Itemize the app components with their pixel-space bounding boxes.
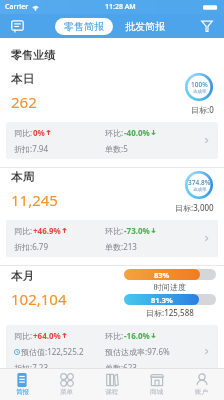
button[interactable]: 批发简报: [121, 18, 169, 35]
staticText: 单数:623: [105, 362, 137, 368]
staticText: 折扣:6.79: [14, 241, 49, 252]
button[interactable]: 本周: [0, 168, 224, 265]
staticText: 目标:0: [191, 104, 214, 115]
button[interactable]: 简报: [0, 369, 44, 400]
staticText: 课程: [105, 388, 118, 396]
button[interactable]: 课程: [89, 369, 134, 400]
staticText: 简报: [16, 388, 29, 396]
button[interactable]: 筛选: [198, 17, 216, 35]
button[interactable]: 本月: [0, 266, 224, 368]
staticText: 102,104: [11, 289, 67, 309]
staticText: -40.0%: [124, 127, 150, 138]
staticText: 262: [11, 92, 37, 112]
staticText: 批发简报: [125, 20, 165, 33]
staticText: 同比:: [14, 127, 33, 138]
staticText: 374.8%: [188, 178, 211, 187]
staticText: 零售简报: [64, 20, 104, 33]
staticText: 环比:: [105, 330, 124, 341]
staticText: 同比:: [14, 225, 33, 236]
staticText: -16.0%: [124, 330, 150, 341]
staticText: 单数:213: [105, 241, 137, 252]
staticText: 时间进度: [154, 282, 186, 292]
staticText: 本日: [11, 72, 34, 86]
staticText: 0%: [33, 127, 45, 138]
staticText: 达成率: [193, 89, 207, 95]
staticText: 11,245: [11, 190, 58, 210]
staticText: 折扣:7.23: [14, 362, 49, 368]
button[interactable]: 菜单: [44, 369, 89, 400]
staticText: 达成率: [193, 187, 207, 193]
staticText: 单数:5: [105, 143, 128, 154]
staticText: Carrier: [5, 2, 29, 12]
staticText: 11:28 AM: [105, 2, 136, 12]
staticText: 目标:125,588: [146, 307, 194, 318]
staticText: 菜单: [60, 388, 73, 396]
staticText: 商城: [150, 388, 163, 396]
staticText: 零售业绩: [11, 48, 55, 62]
staticText: 目标:3,000: [175, 202, 214, 213]
button[interactable]: 账户: [179, 369, 224, 400]
staticText: 同比:: [14, 330, 33, 341]
button[interactable]: 零售简报: [55, 18, 113, 35]
staticText: 环比:: [105, 127, 124, 138]
staticText: 预估值:122,525.2: [21, 346, 84, 357]
staticText: 81.3%: [151, 295, 173, 305]
button[interactable]: 本日: [0, 70, 224, 167]
button[interactable]: 消息: [8, 17, 26, 35]
staticText: -73.0%: [124, 225, 150, 236]
staticText: 100%: [191, 80, 208, 89]
staticText: 本周: [11, 170, 34, 184]
staticText: 账户: [195, 388, 208, 396]
staticText: +46.9%: [33, 225, 61, 236]
staticText: 预估达成率:97.6%: [105, 346, 170, 357]
staticText: 本月: [11, 269, 34, 283]
staticText: +64.0%: [33, 330, 61, 341]
button[interactable]: 商城: [134, 369, 179, 400]
staticText: 环比:: [105, 225, 124, 236]
staticText: 83%: [154, 270, 170, 280]
staticText: 折扣:7.94: [14, 143, 49, 154]
